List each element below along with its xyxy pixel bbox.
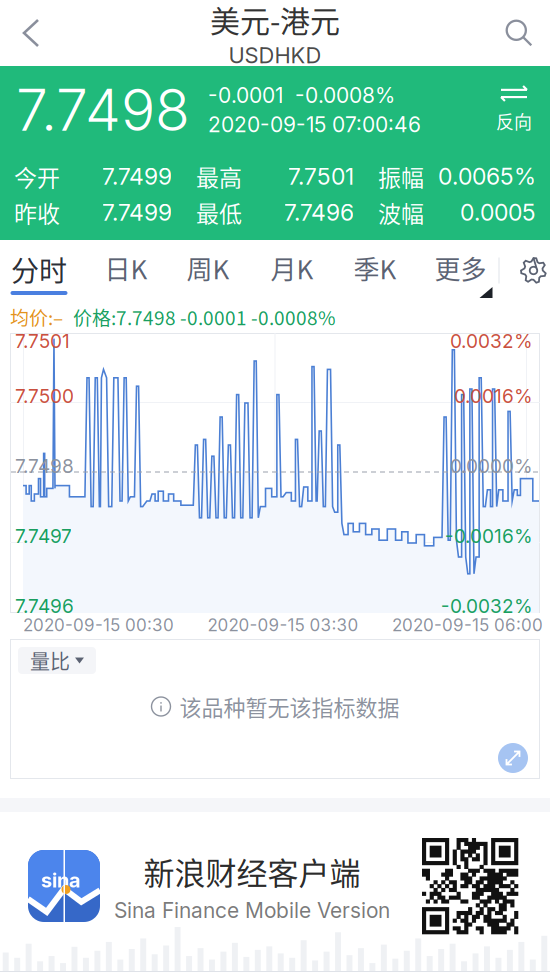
staticText: -0.0016%: [445, 524, 533, 547]
staticText: sina: [41, 868, 81, 892]
button[interactable]: 季K: [353, 240, 396, 301]
staticText: 分时: [11, 249, 67, 289]
staticText: 2020-09-15 06:00: [392, 615, 543, 635]
staticText: 量比: [30, 646, 70, 675]
staticText: 周K: [186, 249, 229, 287]
staticText: Sina Finance Mobile Version: [114, 898, 390, 923]
staticText: 最高: [196, 160, 242, 193]
staticText: 新浪财经客户端: [143, 849, 360, 894]
staticText: 该品种暂无该指标数据: [179, 691, 399, 722]
staticText: 7.7499: [102, 163, 172, 190]
button[interactable]: Search: [488, 0, 550, 66]
staticText: 0.0000%: [450, 454, 533, 477]
staticText: 7.7499: [102, 199, 172, 226]
staticText: 昨收: [14, 196, 60, 229]
staticText: 0.0032%: [450, 329, 533, 352]
button[interactable]: 周K: [186, 240, 229, 301]
button[interactable]: 月K: [270, 240, 313, 301]
staticText: 更多: [434, 249, 486, 287]
staticText: 价格:7.7498 -0.0001 -0.0008%: [73, 303, 335, 331]
button[interactable]: 分时: [11, 240, 66, 301]
staticText: 7.7500: [15, 384, 74, 407]
staticText: 均价:–: [10, 303, 63, 331]
staticText: USDHKD: [228, 42, 321, 68]
staticText: 2020-09-15 07:00:46: [208, 112, 421, 137]
staticText: 0.0065%: [438, 163, 536, 190]
staticText: 0.0016%: [454, 384, 533, 407]
staticText: 今开: [14, 160, 60, 193]
staticText: 月K: [270, 249, 313, 287]
staticText: 7.7496: [15, 594, 74, 617]
staticText: -0.0032%: [441, 594, 533, 617]
staticText: 7.7497: [15, 524, 72, 547]
staticText: -0.0001 -0.0008%: [208, 83, 395, 108]
staticText: 7.7496: [284, 199, 354, 226]
button[interactable]: Settings: [511, 240, 550, 301]
button[interactable]: Full screen: [494, 739, 532, 777]
button[interactable]: 日K: [104, 240, 147, 301]
button[interactable]: 更多: [434, 240, 486, 301]
staticText: 振幅: [378, 160, 424, 193]
staticText: 美元-港元: [210, 0, 340, 41]
staticText: 0.0005: [460, 199, 536, 226]
staticText: 季K: [353, 249, 396, 287]
button[interactable]: Back: [0, 0, 62, 66]
staticText: 7.7501: [15, 329, 70, 352]
staticText: 7.7501: [288, 163, 354, 190]
staticText: 日K: [104, 249, 147, 287]
staticText: 7.7498: [16, 75, 190, 144]
staticText: 2020-09-15 03:30: [207, 615, 358, 635]
staticText: 反向: [496, 108, 532, 134]
staticText: 最低: [196, 196, 242, 229]
staticText: 2020-09-15 00:30: [23, 615, 174, 635]
staticText: 波幅: [378, 196, 424, 229]
button[interactable]: 量比: [18, 647, 96, 674]
button[interactable]: 反向: [486, 84, 542, 136]
staticText: 7.7498: [15, 454, 74, 477]
